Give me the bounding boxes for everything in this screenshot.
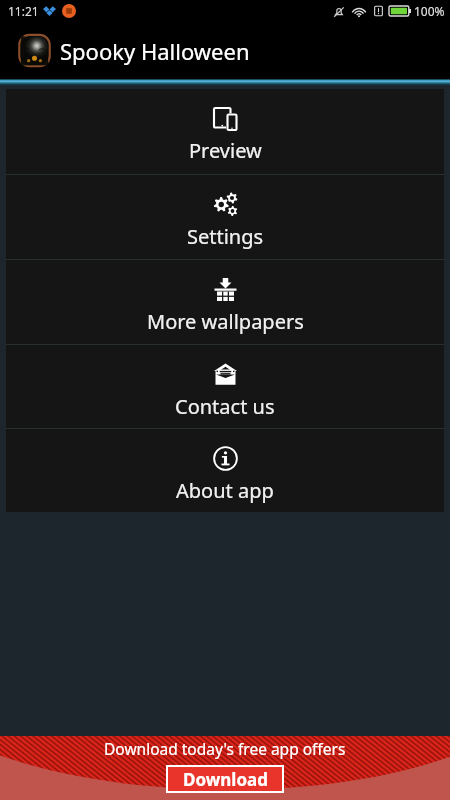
button[interactable]: Settings xyxy=(6,175,444,259)
staticText: 11:21 xyxy=(8,3,39,19)
staticText: Spooky Halloween xyxy=(60,36,250,66)
staticText: More wallpapers xyxy=(147,308,304,335)
staticText: Download xyxy=(183,768,268,791)
staticText: About app xyxy=(176,477,274,504)
button[interactable]: App icon xyxy=(15,31,54,70)
button[interactable]: Download xyxy=(168,767,282,791)
staticText: Contact us xyxy=(175,393,275,420)
button[interactable]: Preview xyxy=(6,89,444,174)
staticText: Preview xyxy=(189,137,262,164)
staticText: 100% xyxy=(414,3,445,19)
button[interactable]: Contact us xyxy=(6,345,444,428)
staticText: Download today's free app offers xyxy=(104,738,346,759)
button[interactable]: More wallpapers xyxy=(6,260,444,344)
button[interactable]: About app xyxy=(6,429,444,512)
staticText: Settings xyxy=(187,223,264,250)
